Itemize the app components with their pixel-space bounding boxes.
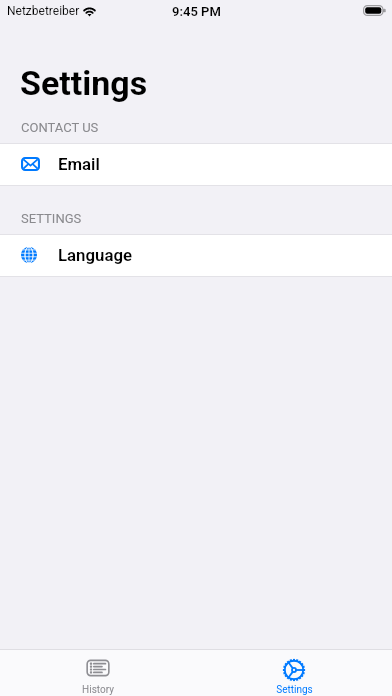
button[interactable]: Email: [0, 144, 392, 185]
staticText: CONTACT US: [21, 120, 99, 135]
staticText: Netzbetreiber: [7, 4, 80, 18]
staticText: SETTINGS: [21, 211, 82, 226]
staticText: Settings: [20, 63, 148, 103]
staticText: Settings: [276, 684, 313, 696]
button[interactable]: Language: [0, 235, 392, 276]
staticText: Email: [58, 154, 100, 174]
staticText: Language: [58, 245, 133, 265]
button[interactable]: Settings: [196, 650, 392, 696]
other: Wi-Fi signal: [83, 5, 96, 15]
staticText: History: [82, 684, 114, 696]
staticText: 9:45 PM: [172, 4, 221, 19]
other: Battery full: [363, 5, 386, 16]
button[interactable]: History: [0, 650, 196, 696]
